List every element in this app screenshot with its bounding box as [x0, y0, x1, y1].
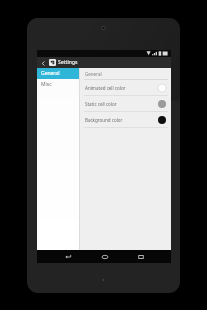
button[interactable]: Navigate up — [37, 59, 49, 67]
button[interactable]: Back — [61, 250, 74, 263]
button[interactable]: Misc — [37, 79, 79, 90]
button[interactable]: Animated cell color — [80, 80, 171, 95]
staticText: Static cell color — [85, 101, 158, 107]
button[interactable]: Static cell color — [80, 96, 171, 111]
staticText: General — [41, 70, 60, 77]
button[interactable]: Background color — [80, 112, 171, 127]
button[interactable]: Home — [98, 250, 111, 263]
button[interactable]: Recent apps — [134, 250, 147, 263]
staticText: Animated cell color — [85, 85, 158, 91]
button[interactable]: General — [37, 68, 79, 79]
staticText: Background color — [85, 117, 158, 123]
staticText: Settings — [58, 59, 78, 66]
staticText: General — [85, 71, 102, 77]
staticText: Misc — [41, 81, 52, 88]
